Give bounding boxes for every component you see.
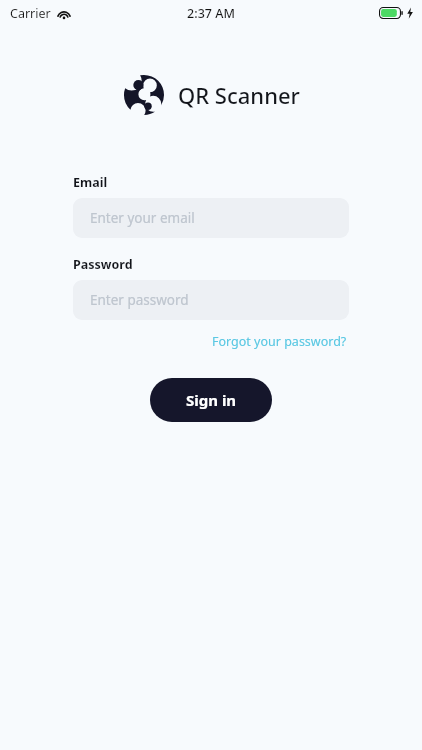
staticText: Email	[73, 174, 108, 191]
staticText: Password	[73, 256, 133, 273]
button[interactable]: Sign in	[150, 378, 272, 422]
staticText: Sign in	[186, 390, 237, 410]
staticText: QR Scanner	[178, 80, 300, 110]
staticText: Enter password	[90, 291, 189, 309]
staticText: Enter your email	[90, 209, 195, 227]
staticText: Carrier	[10, 5, 51, 22]
other: QR Scanner logo	[122, 73, 166, 117]
button[interactable]: Enter your email	[73, 198, 349, 238]
staticText: 2:37 AM	[187, 5, 235, 22]
button[interactable]: Forgot your password?	[210, 331, 349, 352]
button[interactable]: Enter password	[73, 280, 349, 320]
staticText: Forgot your password?	[212, 333, 347, 350]
